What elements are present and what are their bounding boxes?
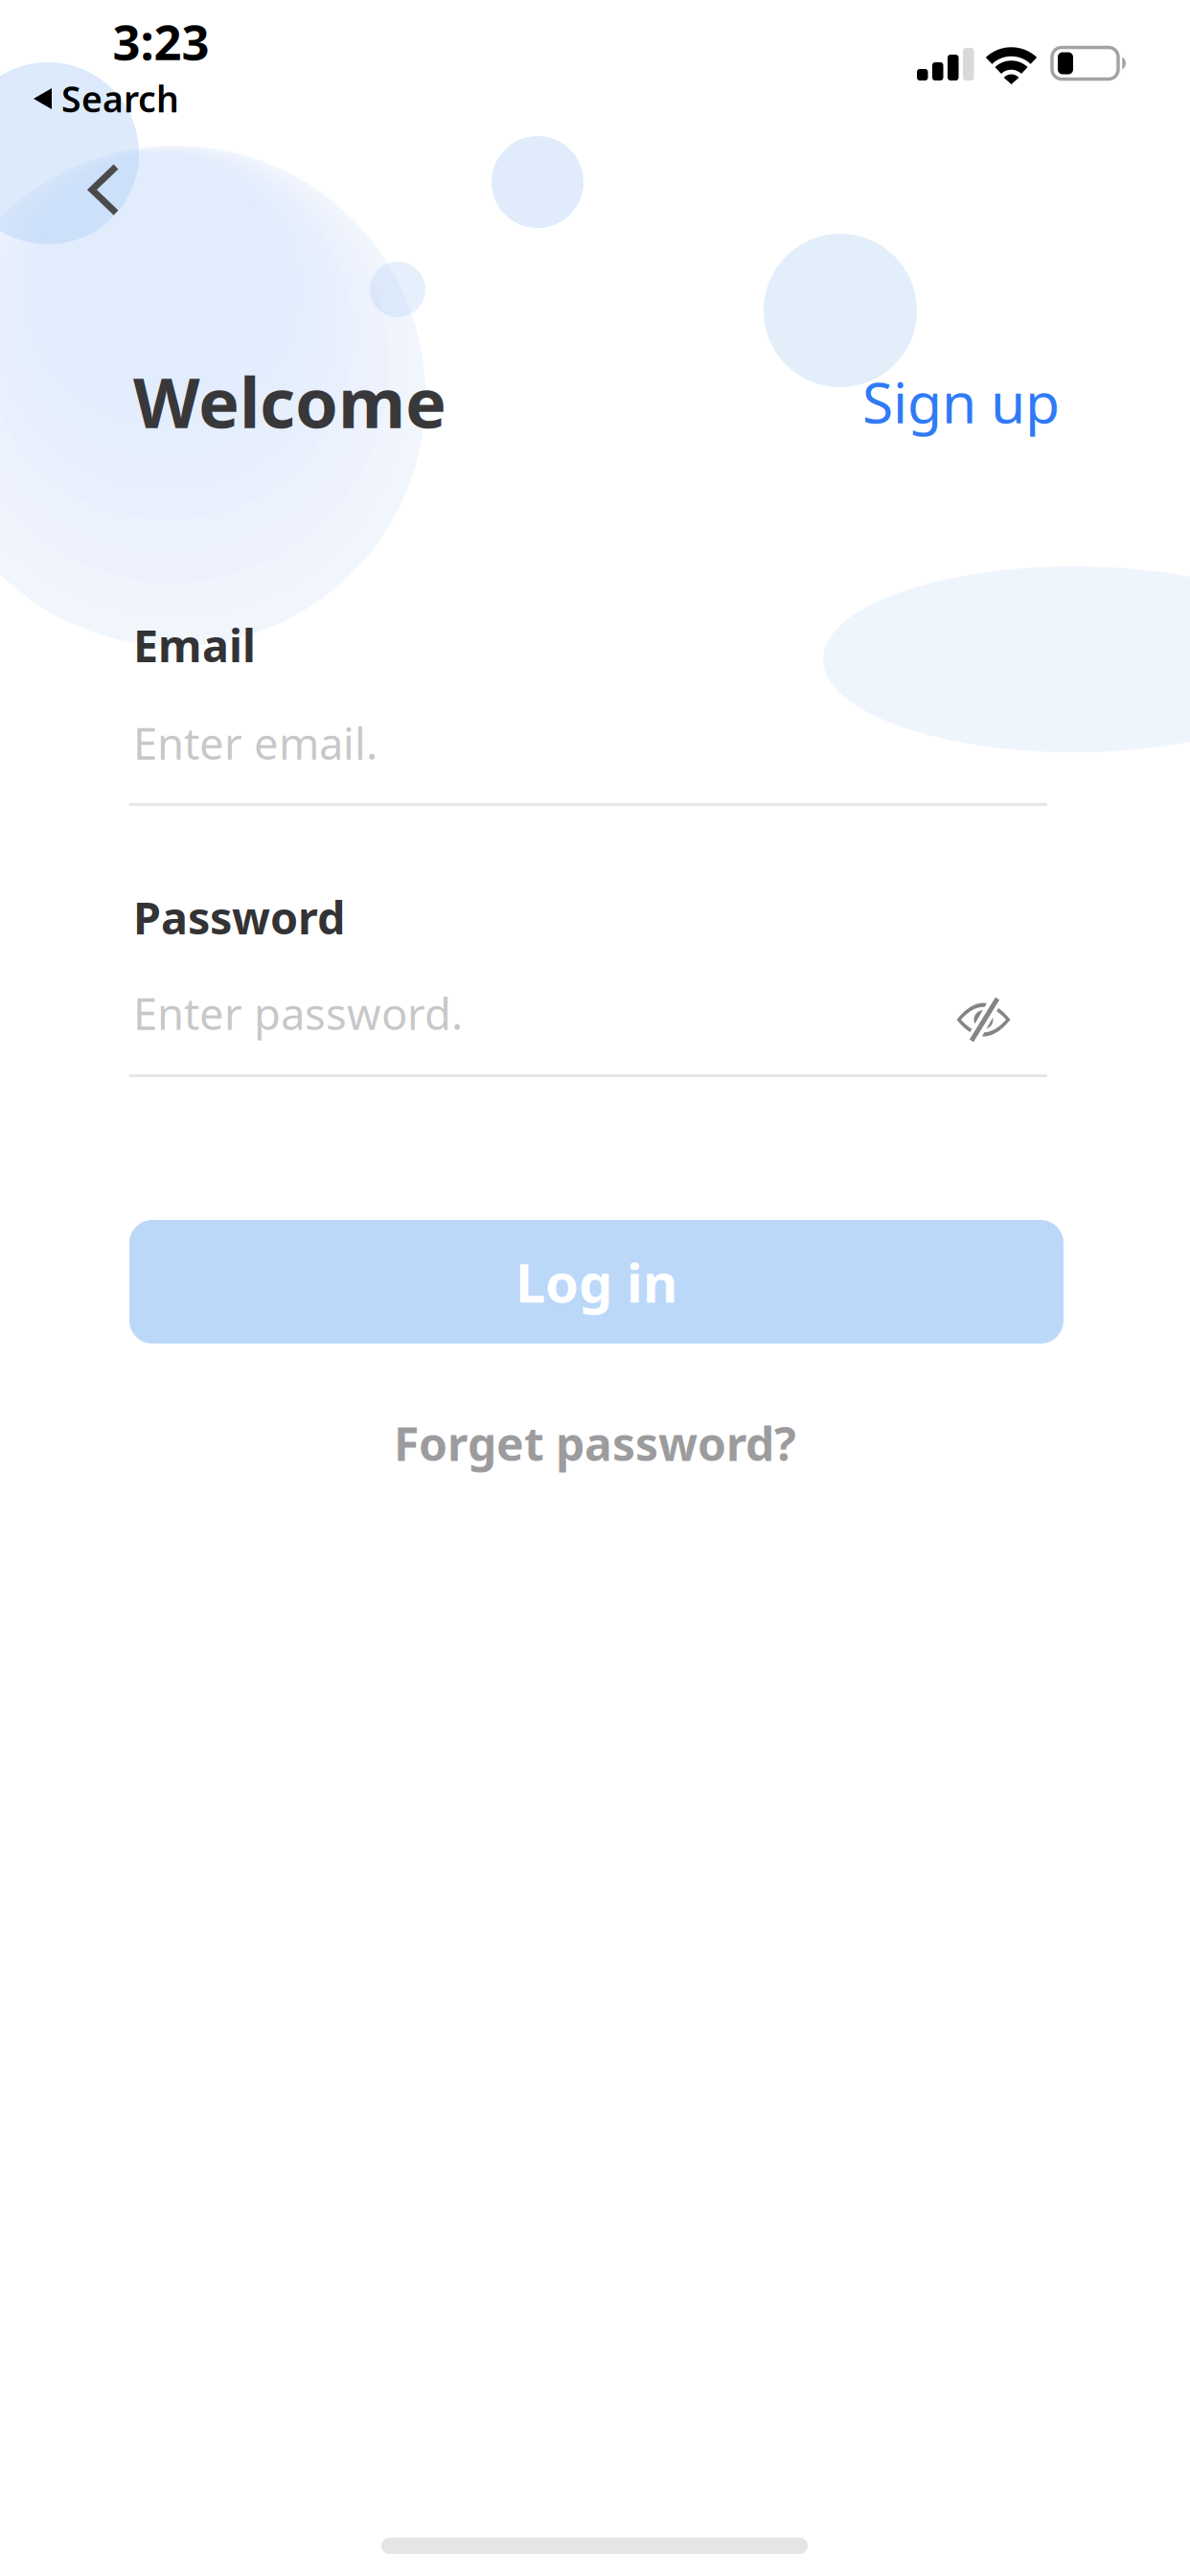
- button[interactable]: [945, 981, 1022, 1058]
- staticText: Forget password?: [394, 1413, 796, 1474]
- button[interactable]: Sign up: [862, 364, 1060, 439]
- staticText: Enter email.: [133, 714, 378, 772]
- staticText: Welcome: [133, 356, 446, 447]
- staticText: Enter password.: [133, 984, 463, 1042]
- staticText: Sign up: [862, 364, 1060, 439]
- staticText: Password: [133, 887, 345, 947]
- staticText: Search: [61, 75, 179, 122]
- staticText: Log in: [515, 1246, 677, 1317]
- button[interactable]: [75, 153, 132, 226]
- button[interactable]: Forget password?: [394, 1413, 796, 1474]
- staticText: Email: [133, 615, 256, 675]
- staticText: 3:23: [113, 9, 209, 74]
- button[interactable]: Log in: [129, 1220, 1064, 1344]
